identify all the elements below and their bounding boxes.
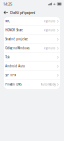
button[interactable]: SIP VPN <box>4 71 60 80</box>
staticText: Vypnuto <box>44 46 56 50</box>
staticText: Odkaz na Windows <box>5 46 29 50</box>
staticText: Snadné projekce <box>5 37 28 41</box>
button[interactable]: Odkaz na Windows <box>4 44 60 53</box>
button[interactable]: Privátní DNS <box>4 80 60 89</box>
staticText: Další připojení <box>10 10 35 15</box>
button[interactable]: Tisk <box>4 53 60 62</box>
staticText: Android Auto <box>5 64 25 68</box>
staticText: Vypnuto <box>44 28 56 32</box>
button[interactable]: Android Auto <box>4 62 60 71</box>
staticText: 14:25 <box>3 1 14 7</box>
staticText: Tisk <box>5 55 9 59</box>
staticText: NFC <box>5 19 10 23</box>
staticText: Vypnuto <box>44 19 56 23</box>
staticText: SIP VPN <box>5 73 16 77</box>
staticText: Privátní DNS <box>5 83 21 86</box>
staticText: Automaticky <box>41 83 56 86</box>
button[interactable]: Snadné projekce <box>4 35 60 44</box>
button[interactable]: NFC <box>4 17 60 26</box>
button[interactable]: HONOR Share <box>4 26 60 35</box>
button[interactable]: Back <box>2 8 10 17</box>
staticText: HONOR Share <box>5 28 23 32</box>
